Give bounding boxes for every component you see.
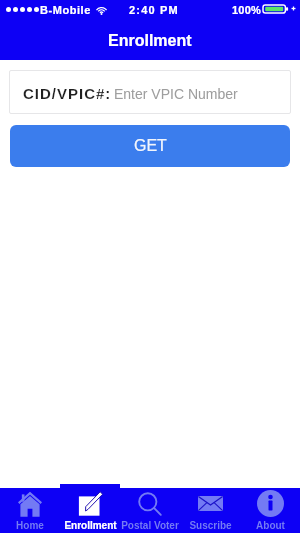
button[interactable]: About <box>240 484 300 533</box>
staticText: Enrollment <box>64 520 117 531</box>
staticText: Postal Voter <box>121 520 179 531</box>
button[interactable]: Suscribe <box>180 484 240 533</box>
button[interactable]: Enter VPIC Number <box>9 70 291 114</box>
staticText: GET <box>134 137 167 155</box>
staticText: B-Mobile <box>40 4 91 16</box>
staticText: Suscribe <box>189 520 232 531</box>
button[interactable]: Home <box>0 484 60 533</box>
staticText: CID/VPIC#: <box>23 85 112 102</box>
staticText: About <box>256 520 285 531</box>
button[interactable]: Postal Voter <box>120 484 180 533</box>
staticText: Enrollment <box>108 32 192 50</box>
staticText: 2:40 PM <box>129 4 179 16</box>
staticText: 100% <box>232 4 261 16</box>
staticText: Home <box>16 520 44 531</box>
staticText: Enter VPIC Number <box>114 86 238 102</box>
button[interactable]: GET <box>10 125 290 167</box>
button[interactable]: Enrollment <box>60 484 120 533</box>
